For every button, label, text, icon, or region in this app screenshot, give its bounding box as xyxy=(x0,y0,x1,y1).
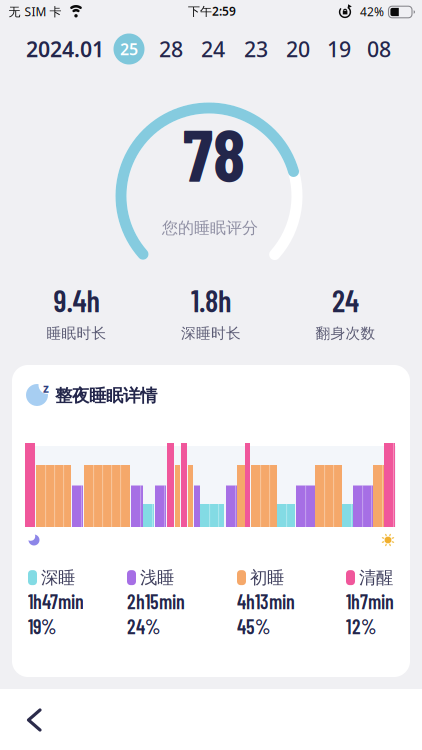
button[interactable]: Back xyxy=(13,707,57,733)
staticText: 2024.01 xyxy=(26,35,104,63)
staticText: 深睡 xyxy=(41,567,75,588)
button[interactable]: 25 xyxy=(113,33,144,64)
button[interactable]: 28 xyxy=(154,33,188,64)
staticText: 1.8h xyxy=(191,282,231,318)
staticText: 12% xyxy=(346,614,376,638)
button[interactable]: 24 xyxy=(196,33,230,64)
button[interactable]: 23 xyxy=(239,33,273,64)
staticText: 下午2:59 xyxy=(188,3,236,19)
staticText: 浅睡 xyxy=(140,567,174,588)
staticText: 2h15min xyxy=(127,589,185,613)
staticText: 45% xyxy=(237,614,270,638)
staticText: 1h7min xyxy=(346,589,394,613)
staticText: 9.4h xyxy=(53,282,99,318)
staticText: 24 xyxy=(201,35,225,63)
button[interactable]: 19 xyxy=(322,33,356,64)
staticText: 24 xyxy=(332,282,359,318)
staticText: 深睡时长 xyxy=(181,324,241,342)
button[interactable]: 20 xyxy=(281,33,315,64)
staticText: 20 xyxy=(286,35,310,63)
staticText: 42% xyxy=(360,3,384,19)
staticText: 19 xyxy=(327,35,351,63)
staticText: 24% xyxy=(127,614,160,638)
staticText: 19% xyxy=(28,614,56,638)
staticText: 28 xyxy=(159,35,183,63)
staticText: 08 xyxy=(367,35,391,63)
staticText: 初睡 xyxy=(250,567,284,588)
staticText: 整夜睡眠详情 xyxy=(55,385,157,406)
staticText: 23 xyxy=(244,35,268,63)
staticText: 25 xyxy=(120,38,138,60)
staticText: 1h47min xyxy=(28,589,84,613)
staticText: 清醒 xyxy=(359,567,393,588)
staticText: 翻身次数 xyxy=(316,324,376,342)
staticText: 4h13min xyxy=(237,589,295,613)
staticText: 无 SIM 卡 xyxy=(8,3,61,19)
button[interactable]: 08 xyxy=(362,33,396,64)
staticText: 睡眠时长 xyxy=(46,324,106,342)
staticText: 您的睡眠评分 xyxy=(162,218,258,238)
staticText: z xyxy=(43,380,49,396)
staticText: 78 xyxy=(183,108,245,196)
